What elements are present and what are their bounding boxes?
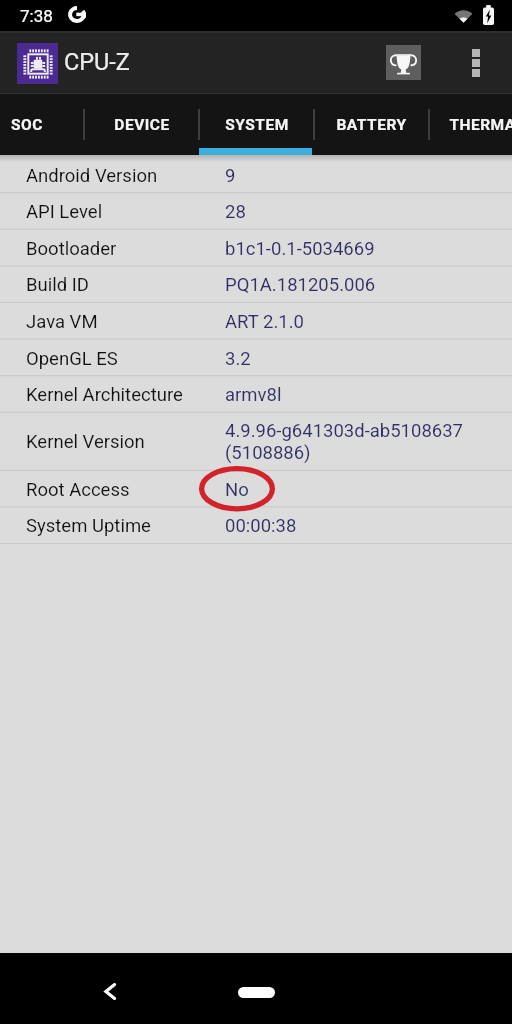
staticText: CPU-Z [64,48,130,76]
button[interactable]: More options [453,31,499,94]
staticText: armv8l [225,384,282,406]
button[interactable]: System Uptime [0,506,512,543]
button[interactable]: Android Version [0,156,512,193]
button[interactable]: Home [206,957,306,1024]
staticText: 4.9.96-g641303d-ab5108637 (5108886) [225,420,464,464]
staticText: No [225,479,249,501]
staticText: API Level [26,201,103,223]
button[interactable]: DEVICE [84,94,199,155]
staticText: Java VM [26,311,98,333]
staticText: THERMAL [449,116,512,134]
button[interactable]: SOC [0,94,84,155]
staticText: 28 [225,201,246,223]
staticText: BATTERY [336,116,407,134]
button[interactable]: Kernel Version [0,412,512,470]
staticText: Bootloader [26,238,117,260]
staticText: 00:00:38 [225,515,297,537]
staticText: 7:38 [20,6,53,26]
staticText: Android Version [26,165,158,187]
staticText: Kernel Architecture [26,384,183,406]
button[interactable]: Java VM [0,302,512,339]
button[interactable]: OpenGL ES [0,339,512,376]
button[interactable]: BATTERY [314,94,429,155]
staticText: SOC [11,116,43,134]
staticText: DEVICE [114,116,170,134]
button[interactable]: Back [85,956,135,1024]
button[interactable]: Kernel Architecture [0,375,512,412]
button[interactable]: Achievements [379,31,427,94]
staticText: System Uptime [26,515,151,537]
button[interactable]: Bootloader [0,229,512,266]
button[interactable]: THERMAL [429,94,512,155]
staticText: Build ID [26,274,89,296]
staticText: PQ1A.181205.006 [225,274,376,296]
staticText: Kernel Version [26,431,145,453]
staticText: 3.2 [225,348,251,370]
button[interactable]: Build ID [0,265,512,302]
staticText: SYSTEM [225,116,289,134]
staticText: Root Access [26,479,130,501]
staticText: OpenGL ES [26,348,118,370]
staticText: 9 [225,165,236,187]
staticText: ART 2.1.0 [225,311,304,333]
button[interactable]: SYSTEM [199,94,314,155]
button[interactable]: API Level [0,192,512,229]
staticText: b1c1-0.1-5034669 [225,238,375,260]
button[interactable]: Root Access [0,470,512,507]
